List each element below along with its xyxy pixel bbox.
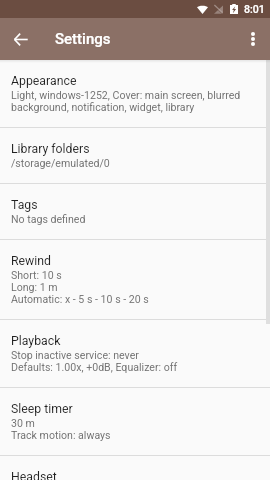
button[interactable]: Tags [0, 184, 270, 239]
staticText: Headset [11, 470, 57, 480]
staticText: Settings [55, 30, 111, 48]
button[interactable]: Rewind [0, 240, 270, 319]
button[interactable]: Appearance [0, 60, 270, 127]
button[interactable]: Headset [0, 456, 270, 480]
staticText: Sleep timer [11, 402, 73, 416]
staticText: 30 m Track motion: always [11, 417, 111, 441]
button[interactable]: Sleep timer [0, 388, 270, 455]
staticText: Appearance [11, 74, 77, 88]
staticText: Light, windows-1252, Cover: main screen,… [11, 89, 245, 113]
staticText: /storage/emulated/0 [11, 157, 110, 169]
button[interactable]: More options [236, 18, 270, 60]
staticText: Short: 10 s Long: 1 m Automatic: x - 5 s… [11, 269, 149, 305]
button[interactable]: Library folders [0, 128, 270, 183]
staticText: Playback [11, 334, 61, 348]
button[interactable]: Playback [0, 320, 270, 387]
staticText: Stop inactive service: never Defaults: 1… [11, 349, 178, 373]
button[interactable]: Back [0, 18, 42, 60]
staticText: Tags [11, 198, 38, 212]
staticText: 8:01 [244, 3, 265, 15]
staticText: Rewind [11, 254, 52, 268]
staticText: No tags defined [11, 213, 86, 225]
staticText: Library folders [11, 142, 90, 156]
